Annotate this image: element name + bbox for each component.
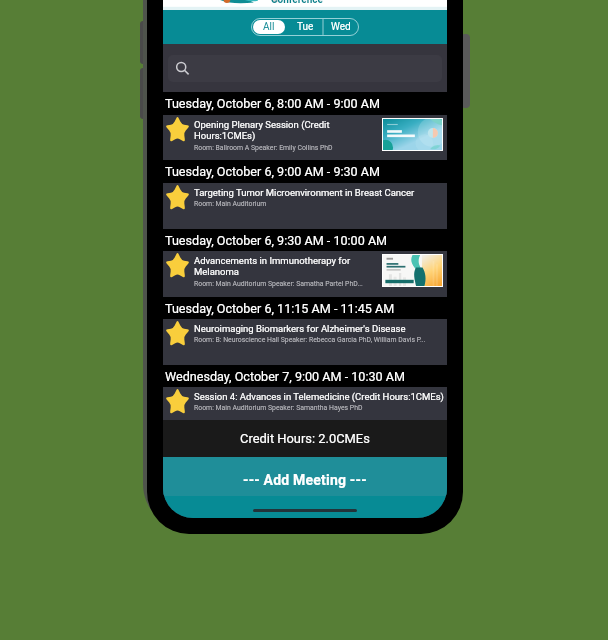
staticText: Opening Plenary Session (Credit Hours:1C…: [194, 119, 373, 142]
staticText: Room: Main Auditorium Speaker: Samatha P…: [194, 280, 363, 288]
staticText: Tue: [297, 21, 314, 33]
staticText: Tuesday, October 6, 9:00 AM - 9:30 AM: [165, 164, 381, 179]
staticText: Wed: [331, 21, 351, 33]
staticText: Neuroimaging Biomarkers for Alzheimer's …: [194, 323, 406, 334]
staticText: Tuesday, October 6, 9:30 AM - 10:00 AM: [165, 233, 388, 248]
staticText: --- Add Meeting ---: [243, 472, 367, 488]
button[interactable]: Opening Plenary Session (Credit Hours:1C…: [163, 115, 447, 160]
staticText: All: [263, 21, 275, 33]
staticText: Tuesday, October 6, 8:00 AM - 9:00 AM: [165, 96, 381, 111]
button[interactable]: All: [253, 20, 285, 34]
button[interactable]: Neuroimaging Biomarkers for Alzheimer's …: [163, 319, 447, 365]
button[interactable]: --- Add Meeting ---: [163, 457, 447, 496]
staticText: Credit Hours: 2.0CMEs: [240, 431, 370, 446]
staticText: Wednesday, October 7, 9:00 AM - 10:30 AM: [165, 369, 405, 384]
button[interactable]: Wed: [323, 18, 359, 36]
staticText: Conference: [271, 0, 323, 4]
staticText: Tuesday, October 6, 11:15 AM - 11:45 AM: [165, 301, 395, 316]
staticText: Room: B: Neuroscience Hall Speaker: Rebe…: [194, 336, 426, 344]
staticText: Room: Main Auditorium Speaker: Samantha …: [194, 404, 363, 412]
button[interactable]: Advancements in Immunotherapy for Melano…: [163, 251, 447, 297]
staticText: Advancements in Immunotherapy for Melano…: [194, 255, 373, 278]
button[interactable]: Session 4: Advances in Telemedicine (Cre…: [163, 387, 447, 420]
button[interactable]: Tue: [287, 18, 323, 36]
button[interactable]: Search sessions: [168, 55, 442, 82]
button[interactable]: Targeting Tumor Microenvironment in Brea…: [163, 183, 447, 229]
staticText: Room: Ballroom A Speaker: Emily Collins …: [194, 144, 333, 152]
staticText: Room: Main Auditorium: [194, 200, 267, 208]
staticText: Session 4: Advances in Telemedicine (Cre…: [194, 391, 444, 402]
staticText: Targeting Tumor Microenvironment in Brea…: [194, 187, 415, 198]
